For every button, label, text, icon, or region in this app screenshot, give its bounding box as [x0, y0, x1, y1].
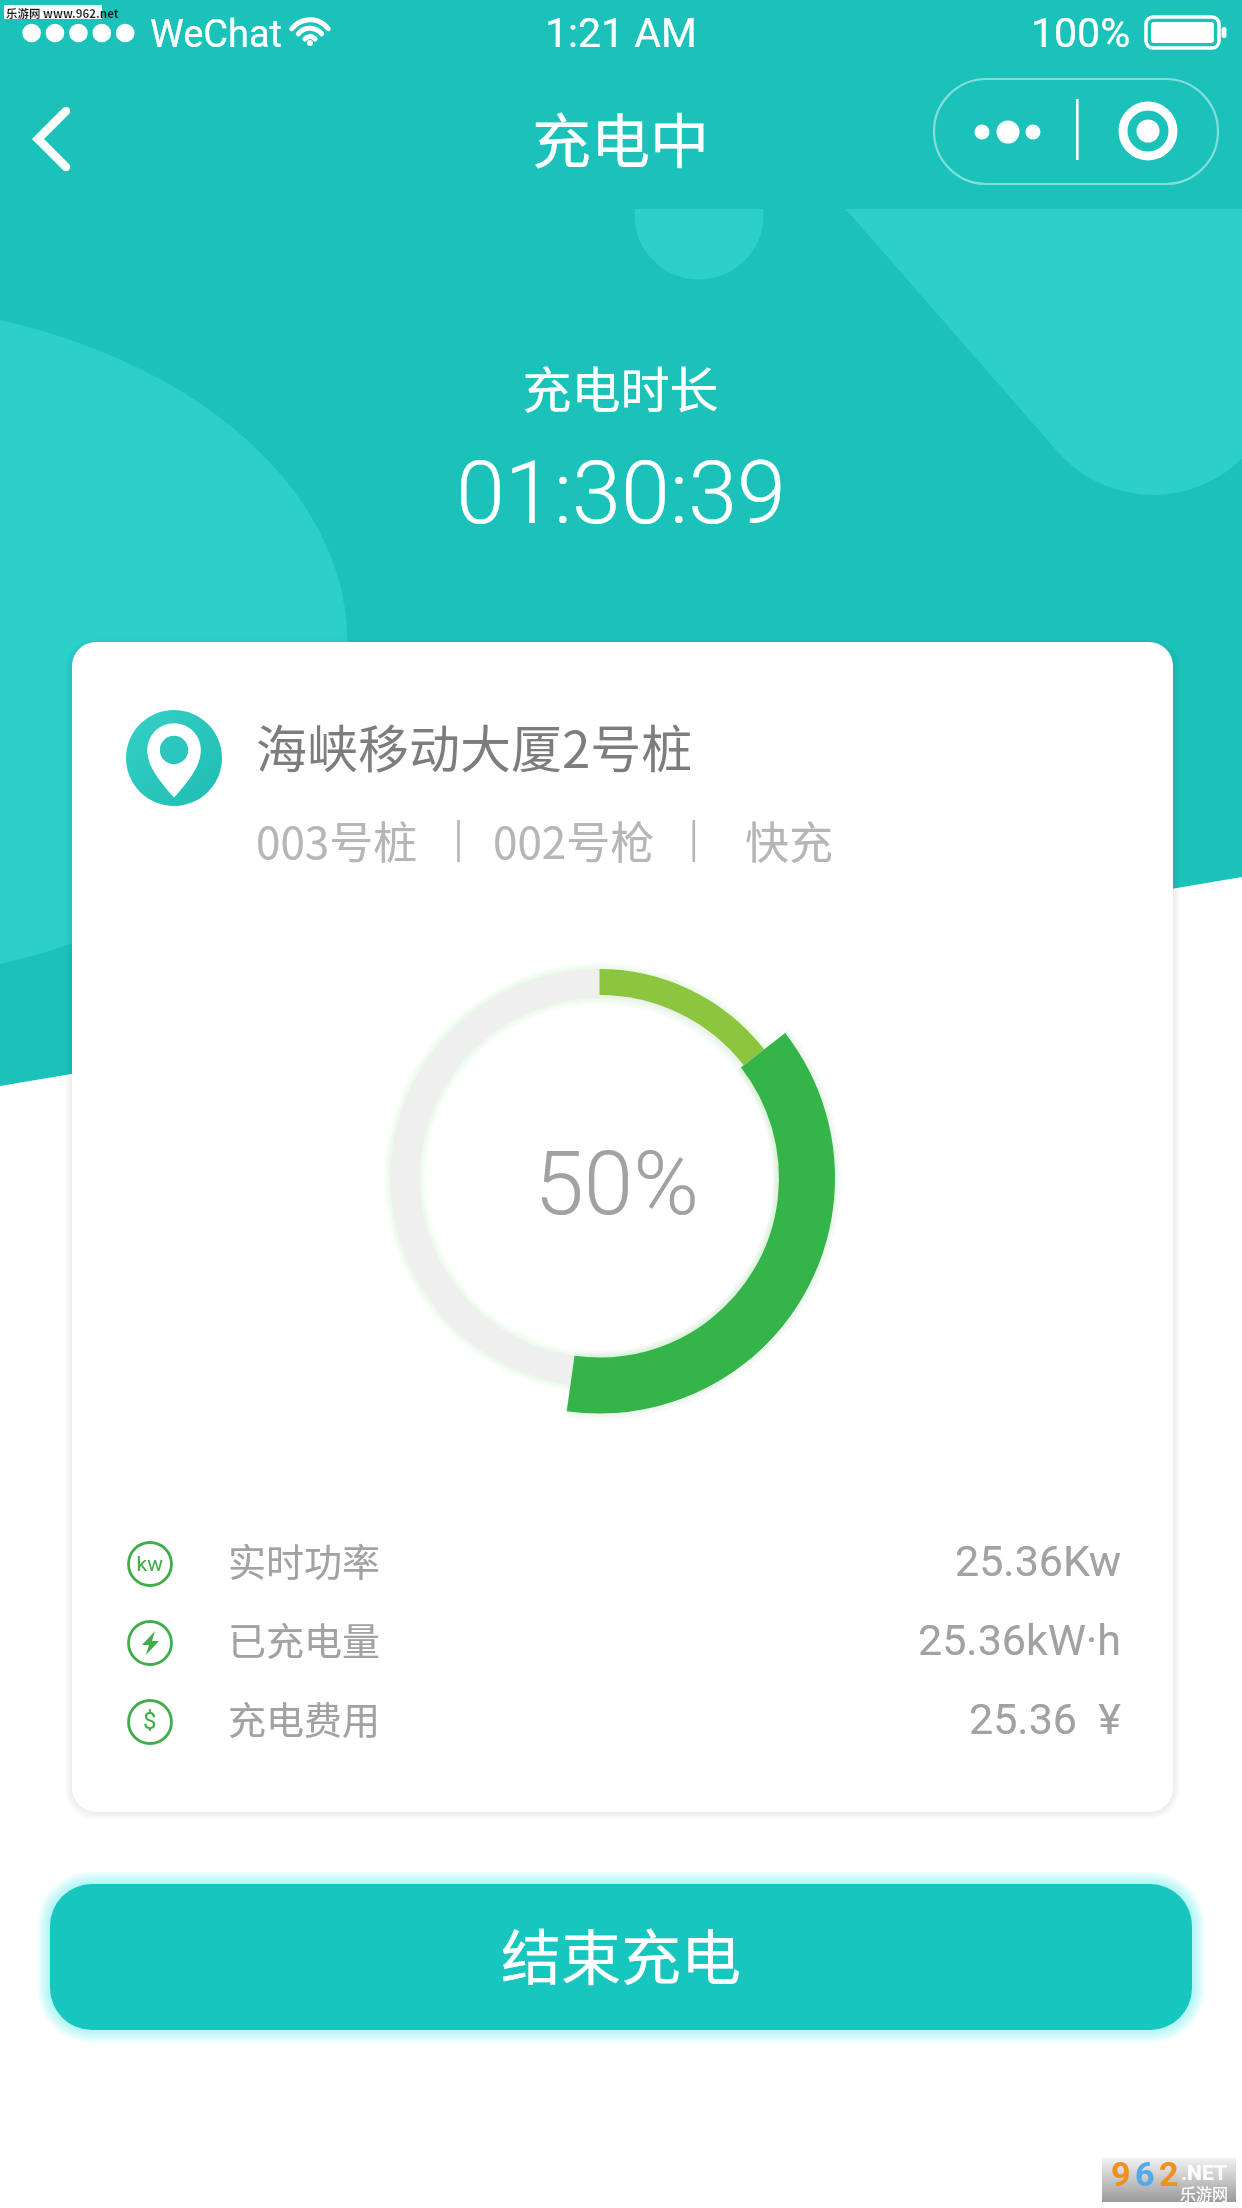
button[interactable]: More options and close mini program — [934, 79, 1218, 184]
button[interactable]: Back — [14, 90, 114, 190]
button[interactable] — [72, 642, 1173, 1812]
button[interactable] — [50, 1884, 1192, 2030]
